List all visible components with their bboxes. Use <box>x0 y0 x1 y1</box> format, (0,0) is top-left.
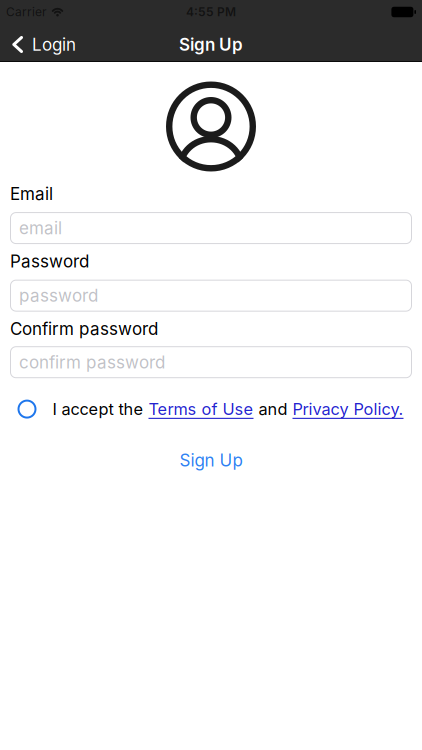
button[interactable]: Sign Up <box>179 450 242 471</box>
textField[interactable]: confirm password <box>10 346 412 378</box>
staticText: Sign Up <box>179 450 242 471</box>
staticText: confirm password <box>19 352 165 372</box>
button[interactable]: Privacy Policy. <box>292 399 403 419</box>
staticText: Confirm password <box>10 319 158 339</box>
staticText: Login <box>32 34 76 55</box>
staticText: Carrier <box>6 5 47 19</box>
staticText: password <box>19 285 98 306</box>
textField[interactable]: email <box>10 212 412 244</box>
staticText: Email <box>10 183 53 204</box>
staticText: Password <box>10 251 89 272</box>
staticText: and <box>253 399 292 419</box>
staticText: Terms of Use <box>148 399 253 419</box>
button[interactable]: Terms of Use <box>148 399 253 419</box>
button[interactable]: Back <box>0 34 76 55</box>
button[interactable]: I accept the Terms of Use and Privacy Po… <box>17 400 36 419</box>
staticText: email <box>19 218 62 238</box>
staticText: Sign Up <box>179 34 243 55</box>
staticText: 4:55 PM <box>186 5 236 19</box>
staticText: I accept the <box>52 399 148 419</box>
staticText: Privacy Policy. <box>292 399 403 419</box>
textField[interactable]: password <box>10 280 412 312</box>
